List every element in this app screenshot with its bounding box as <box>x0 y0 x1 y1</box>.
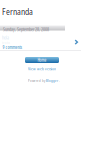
staticText: hola <box>2 34 9 41</box>
button[interactable]: hola <box>0 33 85 51</box>
staticText: View web version <box>28 66 56 71</box>
staticText: 9 comments <box>2 44 22 50</box>
staticText: Fernanda <box>2 6 33 17</box>
button[interactable]: View web version <box>26 66 58 71</box>
staticText: . <box>59 78 60 83</box>
staticText: Blogger <box>46 78 58 83</box>
button[interactable]: Home <box>25 57 59 63</box>
staticText: Powered by <box>28 78 45 83</box>
staticText: Sunday, September 28, 2008 <box>3 26 49 32</box>
staticText: texto <box>2 39 10 45</box>
button[interactable]: Blogger <box>46 78 58 83</box>
staticText: Home <box>37 57 46 63</box>
